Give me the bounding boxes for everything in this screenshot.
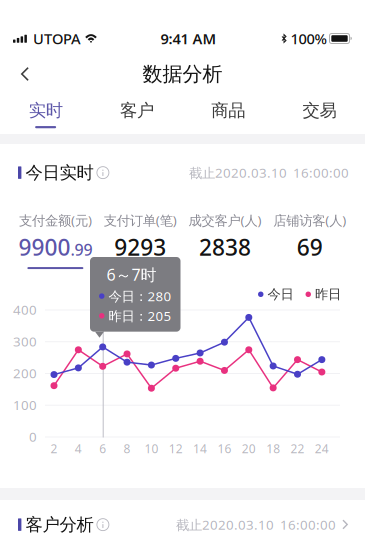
button[interactable]: Back <box>6 57 44 91</box>
staticText: 2838 <box>199 232 251 262</box>
button[interactable]: 商品 <box>182 90 274 137</box>
button[interactable]: 实时 <box>0 90 91 137</box>
staticText: .99 <box>70 239 92 260</box>
staticText: 交易 <box>302 100 336 121</box>
staticText: 22 <box>290 440 304 456</box>
staticText: 支付订单(笔) <box>104 211 177 229</box>
staticText: 店铺访客(人) <box>273 211 346 229</box>
staticText: 9900 <box>18 232 70 262</box>
button[interactable]: 客户 <box>91 90 182 137</box>
staticText: 12 <box>169 440 183 456</box>
staticText: 客户 <box>120 100 154 121</box>
staticText: 今日 <box>267 286 293 302</box>
staticText: 200 <box>13 364 37 382</box>
staticText: 20 <box>242 440 256 456</box>
staticText: 4 <box>75 440 82 456</box>
staticText: 18 <box>266 440 280 456</box>
staticText: 客户分析 <box>25 514 93 535</box>
staticText: 300 <box>13 332 37 350</box>
staticText: 2 <box>50 440 57 456</box>
staticText: 8 <box>124 440 131 456</box>
button[interactable]: 交易 <box>274 90 365 137</box>
staticText: 10 <box>144 440 158 456</box>
staticText: 实时 <box>29 100 63 121</box>
staticText: UTOPA <box>33 29 81 48</box>
staticText: 截止2020.03.10 16:00:00 <box>189 164 349 181</box>
staticText: 24 <box>315 440 329 456</box>
staticText: 400 <box>13 301 37 318</box>
staticText: 今日实时 <box>25 162 93 183</box>
staticText: 16 <box>217 440 231 456</box>
staticText: 6 <box>99 440 106 456</box>
staticText: 100 <box>13 396 37 414</box>
staticText: 69 <box>297 232 323 262</box>
staticText: 9293 <box>114 232 166 262</box>
staticText: 数据分析 <box>142 62 222 86</box>
staticText: 成交客户(人) <box>188 211 261 229</box>
staticText: 商品 <box>211 100 245 121</box>
staticText: 6～7时 <box>106 264 156 285</box>
staticText: 14 <box>193 440 207 456</box>
staticText: 支付金额(元) <box>19 211 92 229</box>
staticText: 9:41 AM <box>160 29 216 48</box>
staticText: 昨日：205 <box>108 307 171 325</box>
staticText: 截止2020.03.10 16:00:00 <box>176 516 336 533</box>
staticText: 100% <box>290 29 326 48</box>
staticText: 昨日 <box>315 286 341 302</box>
staticText: 0 <box>29 428 37 445</box>
staticText: 今日：280 <box>108 287 171 305</box>
